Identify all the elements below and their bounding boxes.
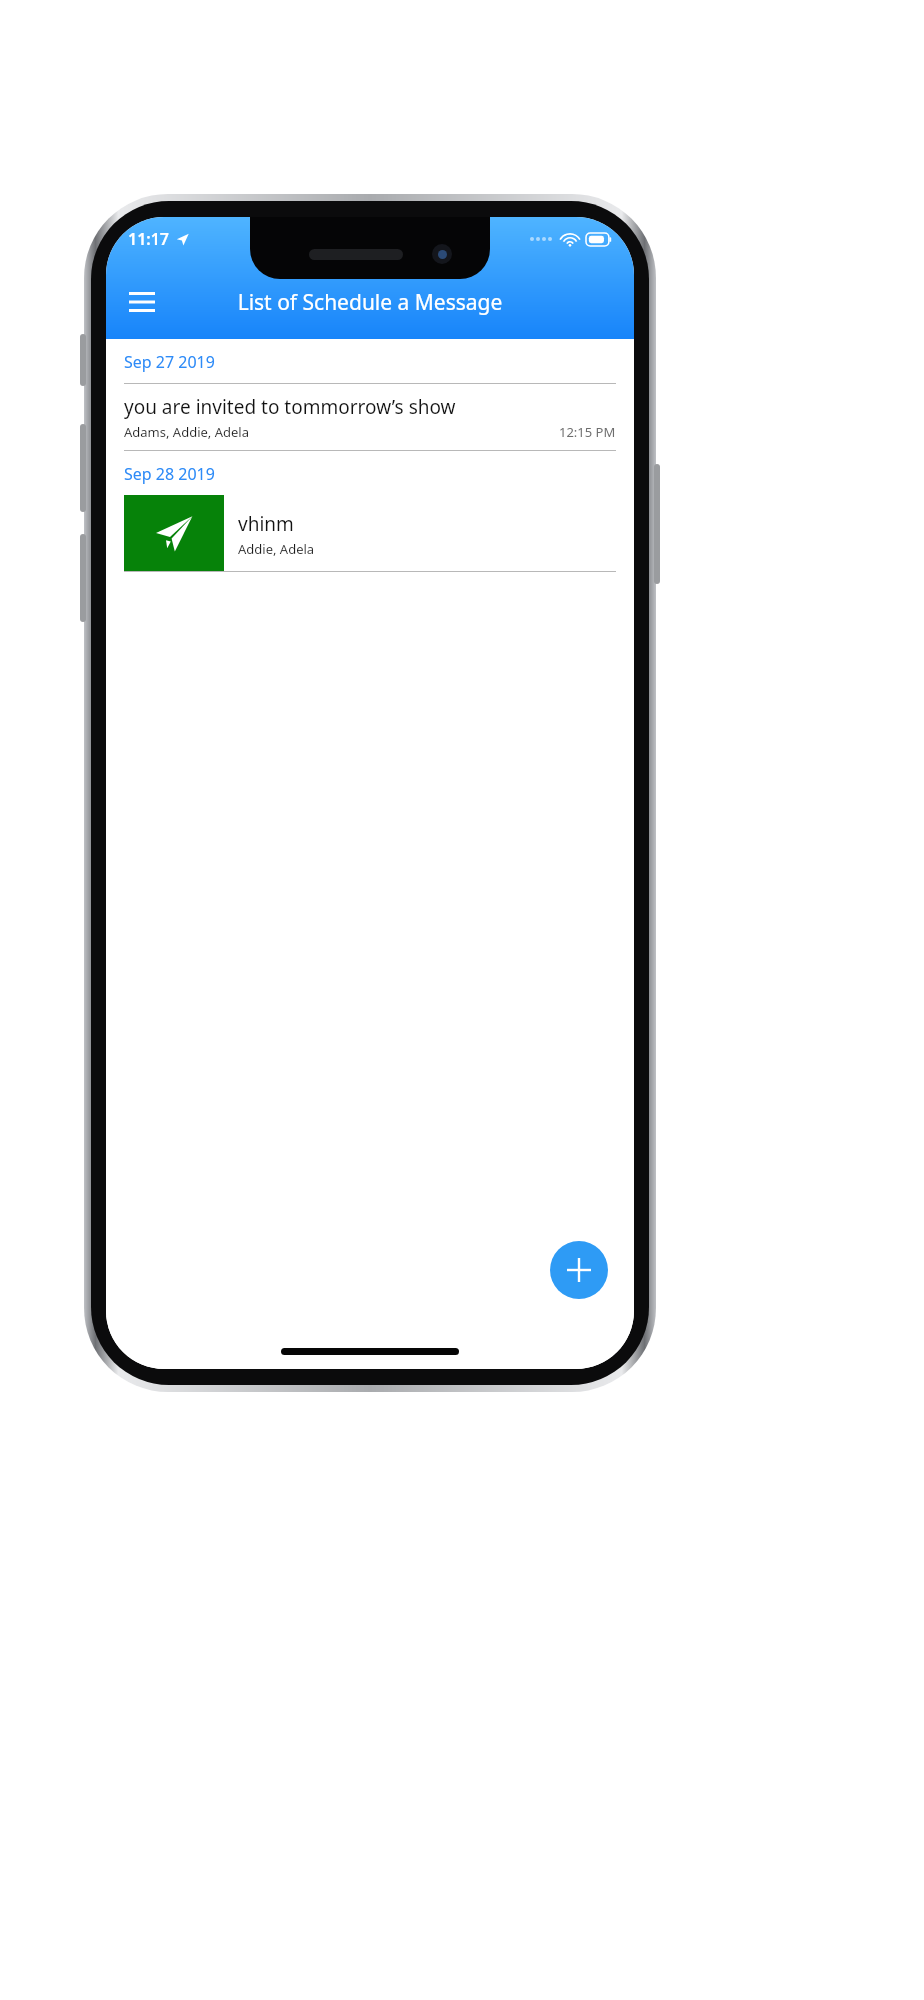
button[interactable]: Add new scheduled message: [550, 1241, 608, 1299]
staticText: Adams, Addie, Adela: [124, 423, 249, 441]
staticText: Sep 27 2019: [124, 351, 215, 373]
staticText: List of Schedule a Message: [168, 288, 572, 317]
button[interactable]: you are invited to tommorrow’s show: [106, 384, 634, 450]
staticText: 12:15 PM: [559, 423, 616, 441]
staticText: Sep 28 2019: [124, 463, 215, 485]
staticText: Addie, Adela: [238, 540, 315, 558]
staticText: 11:17: [128, 228, 170, 250]
staticText: you are invited to tommorrow’s show: [124, 394, 456, 420]
button[interactable]: Open navigation menu: [116, 276, 168, 328]
staticText: vhinm: [238, 511, 294, 537]
button[interactable]: vhinm: [124, 495, 616, 571]
